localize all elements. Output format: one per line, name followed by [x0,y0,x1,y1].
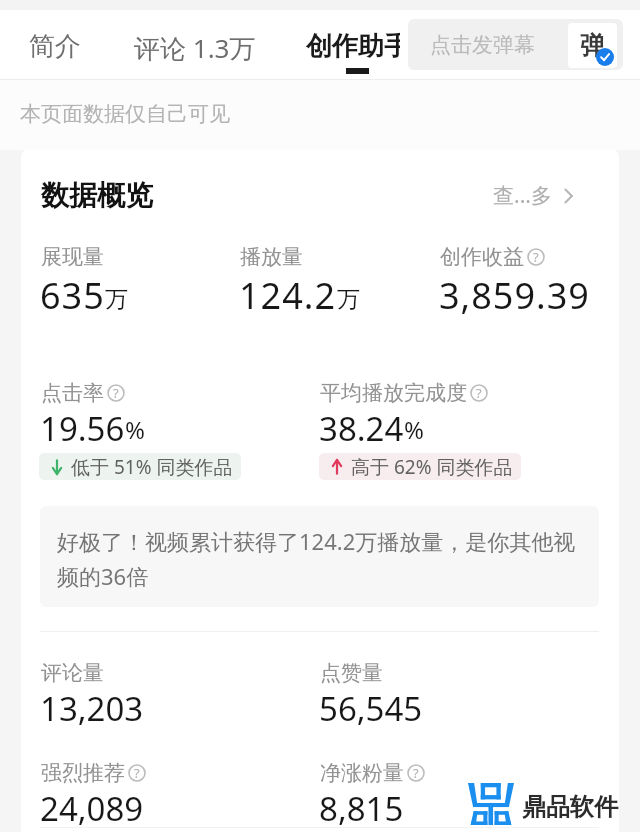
staticText: 弹 [580,30,605,61]
staticText: 创作收益 [440,244,524,270]
button[interactable]: Send danmaku [568,23,617,68]
button[interactable]: 低于 51% 同类作品 [49,453,233,480]
staticText: 点击发弹幕 [430,32,535,58]
staticText: 3,859.39 [439,271,590,320]
staticText: ? [134,764,140,782]
staticText: 24,089 [40,786,144,831]
staticText: 评论量 [41,660,104,686]
button[interactable]: 简介 [29,30,81,63]
staticText: 播放量 [240,244,303,270]
staticText: ? [476,384,482,402]
button[interactable]: 高于 62% 同类作品 [329,453,513,480]
staticText: ? [113,384,119,402]
staticText: 好极了！视频累计获得了124.2万播放量，是你其他视频的36倍 [57,526,580,592]
staticText: 展现量 [41,244,104,270]
staticText: 低于 51% 同类作品 [71,454,233,480]
staticText: 万 [105,285,128,314]
staticText: 8,815 [319,786,404,831]
staticText: 净涨粉量 [320,760,404,786]
staticText: 平均播放完成度 [320,380,467,406]
staticText: ? [413,764,419,782]
staticText: 鼎品软件 [522,792,618,822]
staticText: 数据概览 [41,178,153,213]
staticText: % [125,413,145,446]
button[interactable]: 点击发弹幕 [408,19,623,70]
staticText: 19.56 [40,406,125,451]
staticText: 点击率 [41,380,104,406]
staticText: 评论 1.3万 [134,30,256,66]
staticText: 本页面数据仅自己可见 [20,101,230,127]
staticText: % [404,413,424,446]
button[interactable]: 创作助手 [306,30,400,63]
staticText: 查...多 [493,181,552,210]
staticText: 高于 62% 同类作品 [351,454,513,480]
button[interactable]: 查...多 [493,181,578,210]
staticText: ? [533,248,539,266]
staticText: 强烈推荐 [41,760,125,786]
staticText: 124.2 [239,271,337,320]
button[interactable]: 评论 1.3万 [134,30,256,66]
staticText: 简介 [29,30,81,63]
staticText: 38.24 [319,406,404,451]
staticText: 56,545 [319,686,423,731]
staticText: 点赞量 [320,660,383,686]
staticText: 创作助手 [306,30,400,63]
staticText: 万 [337,285,360,314]
staticText: 635 [40,271,105,320]
staticText: 13,203 [40,686,144,731]
